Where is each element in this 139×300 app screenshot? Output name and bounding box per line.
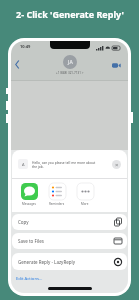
button[interactable] <box>112 63 121 68</box>
staticText: 2- Click 'Generate Reply' <box>16 8 124 20</box>
staticText: Generate Reply - LazyReply <box>18 259 75 265</box>
button[interactable]: Save to Files <box>12 233 127 249</box>
staticText: the job. <box>32 164 44 168</box>
staticText: +1 (848) 321-7131 > <box>56 71 84 75</box>
staticText: More <box>81 202 89 206</box>
button[interactable]: Generate Reply - LazyReply <box>12 253 127 270</box>
button[interactable]: Copy <box>12 214 127 230</box>
staticText: A <box>22 162 25 167</box>
button[interactable]: A <box>12 150 127 178</box>
staticText: × <box>115 161 119 169</box>
button[interactable]: Edit Actions... <box>16 276 43 282</box>
staticText: Messages <box>22 202 36 206</box>
staticText: 10:49 <box>20 44 31 49</box>
staticText: Copy <box>18 219 29 225</box>
staticText: JA <box>68 59 73 66</box>
staticText: Save to Files <box>18 238 44 244</box>
button[interactable]: × <box>112 160 121 169</box>
button[interactable]: Messages <box>15 183 43 206</box>
staticText: Reminders <box>49 202 65 206</box>
staticText: Hello, can you please tell me more about <box>32 160 96 164</box>
button[interactable]: Reminders <box>43 183 71 206</box>
button[interactable] <box>15 60 20 69</box>
button[interactable]: More <box>71 183 99 206</box>
